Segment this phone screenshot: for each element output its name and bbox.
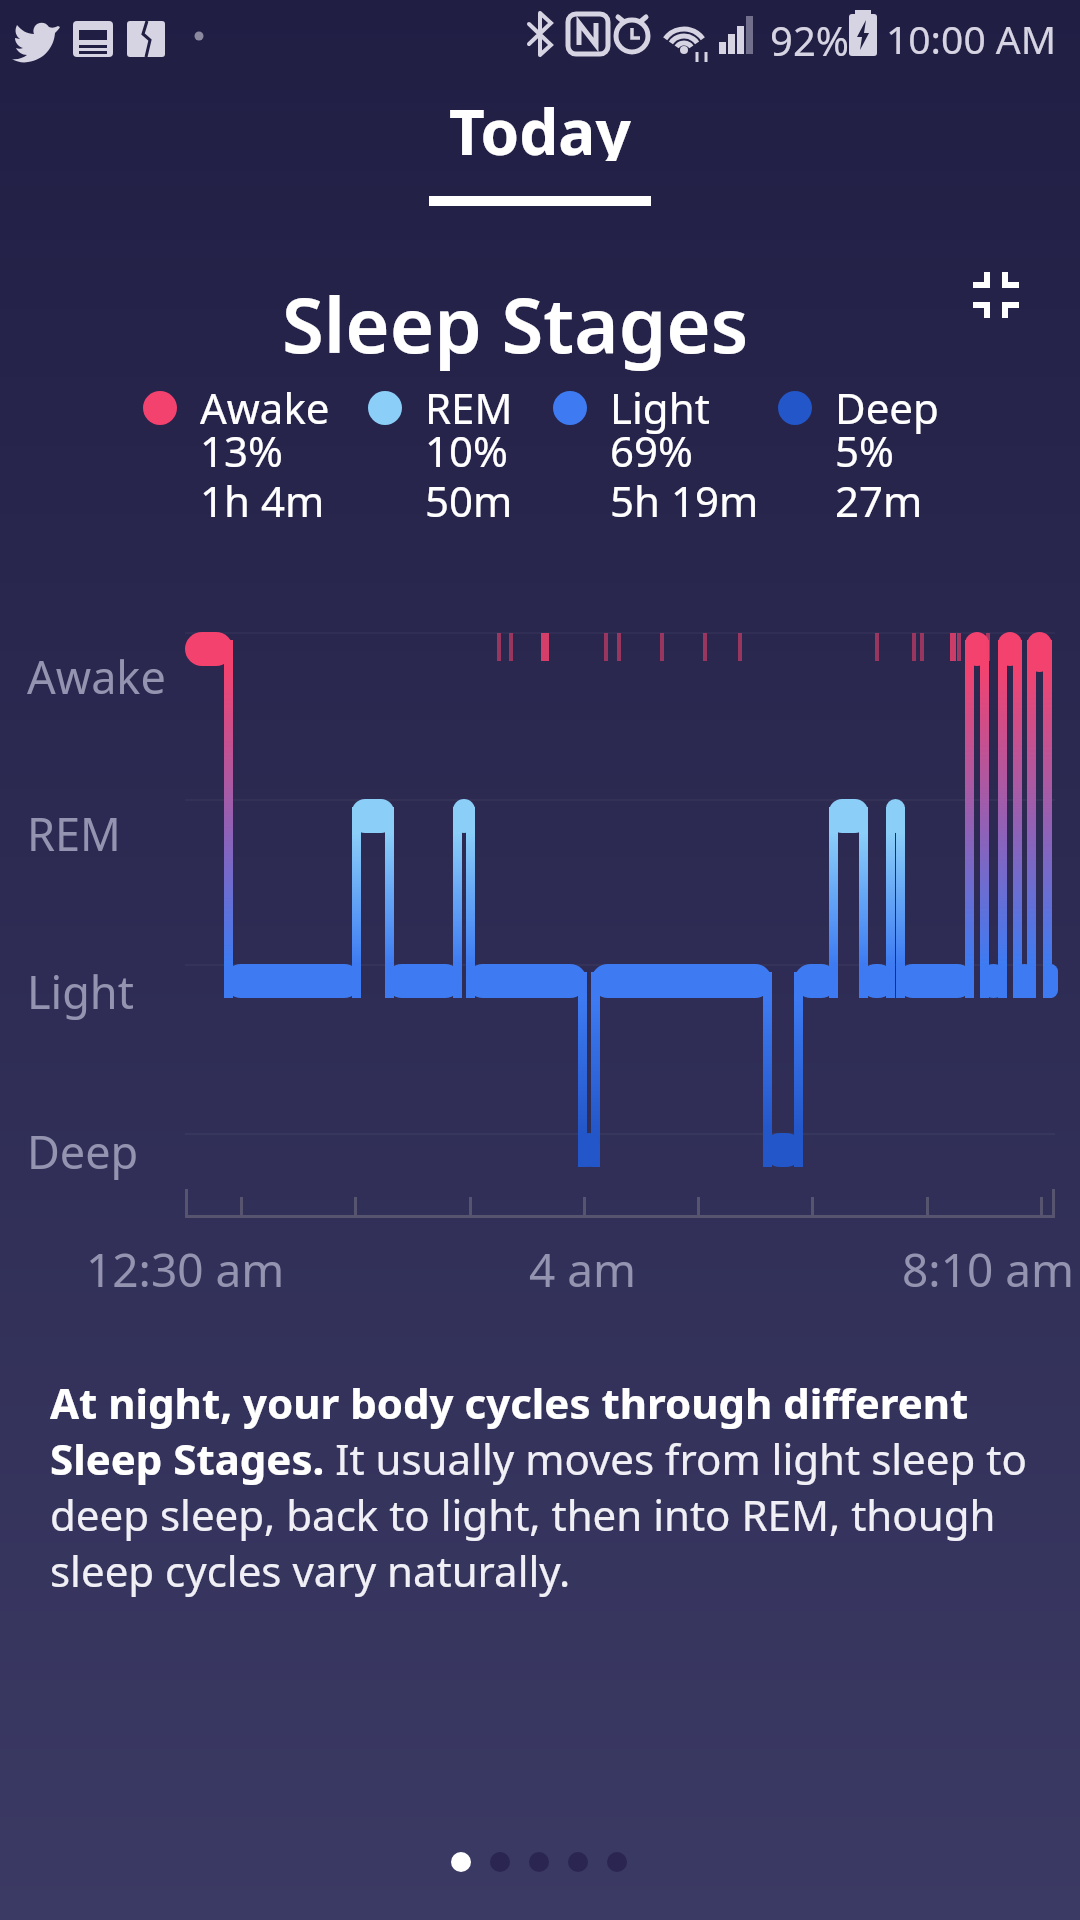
button[interactable]: Light — [610, 379, 710, 436]
staticText: Deep — [27, 1121, 139, 1182]
staticText: 10% — [425, 422, 508, 479]
button[interactable]: REM — [425, 379, 513, 436]
button[interactable] — [490, 1852, 510, 1872]
button[interactable] — [568, 1852, 588, 1872]
staticText: 13% — [200, 422, 283, 479]
staticText: 69% — [610, 422, 693, 479]
staticText: 1h 4m — [200, 472, 325, 529]
staticText: REM — [27, 803, 121, 864]
staticText: sleep cycles vary naturally. — [50, 1542, 571, 1599]
staticText: deep sleep, back to light, then into REM… — [50, 1486, 996, 1543]
staticText: 92% — [770, 13, 849, 67]
staticText: At night, your body cycles through diffe… — [50, 1374, 969, 1431]
staticText: Light — [27, 961, 134, 1022]
staticText: Awake — [200, 379, 330, 436]
button[interactable] — [529, 1852, 549, 1872]
staticText: Today — [449, 89, 631, 161]
staticText: Awake — [27, 646, 166, 707]
button[interactable] — [607, 1852, 627, 1872]
button[interactable]: Deep — [835, 379, 939, 436]
staticText: 8:10 am — [902, 1238, 1075, 1294]
button[interactable]: Awake — [200, 379, 330, 436]
staticText: 27m — [835, 472, 923, 529]
staticText: REM — [425, 379, 513, 436]
button[interactable] — [451, 1852, 471, 1872]
staticText: 10:00 AM — [886, 12, 1057, 65]
staticText: 5% — [835, 422, 894, 479]
staticText: 5h 19m — [610, 472, 759, 529]
staticText: 4 am — [529, 1238, 637, 1294]
staticText: 50m — [425, 472, 513, 529]
staticText: Sleep Stages. It usually moves from ligh… — [50, 1430, 1027, 1487]
staticText: Sleep Stages — [282, 272, 749, 372]
button[interactable]: Today — [390, 89, 690, 161]
staticText: Light — [610, 379, 710, 436]
button[interactable] — [963, 262, 1029, 328]
staticText: 12:30 am — [86, 1238, 285, 1294]
staticText: Deep — [835, 379, 939, 436]
